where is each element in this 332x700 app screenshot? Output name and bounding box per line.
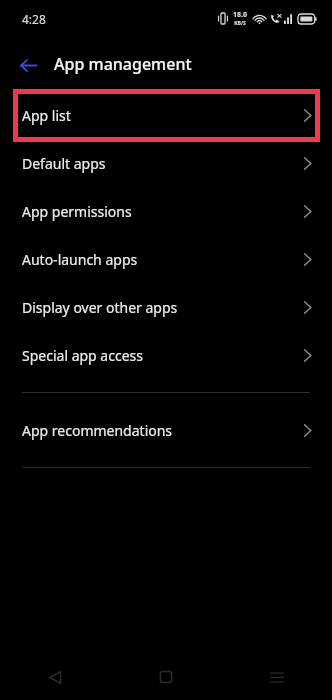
button[interactable]: App list — [0, 91, 332, 139]
staticText: 18.0 — [233, 10, 247, 20]
staticText: App list — [22, 106, 71, 125]
button[interactable]: Home — [110, 654, 221, 700]
staticText: Auto-launch apps — [22, 250, 138, 269]
button[interactable]: App permissions — [0, 187, 332, 235]
staticText: Special app access — [22, 346, 143, 365]
button[interactable]: Recent apps — [221, 654, 332, 700]
staticText: 4:28 — [22, 11, 46, 27]
staticText: Display over other apps — [22, 298, 178, 317]
staticText: App management — [54, 53, 192, 75]
staticText: Default apps — [22, 154, 106, 173]
staticText: KB/S — [234, 20, 246, 27]
button[interactable]: Display over other apps — [0, 283, 332, 331]
button[interactable]: Back — [0, 654, 110, 700]
button[interactable]: Back — [12, 49, 44, 81]
staticText: App recommendations — [22, 421, 173, 440]
button[interactable]: App recommendations — [0, 406, 332, 454]
button[interactable]: Default apps — [0, 139, 332, 187]
button[interactable]: Auto-launch apps — [0, 235, 332, 283]
staticText: App permissions — [22, 202, 132, 221]
button[interactable]: Special app access — [0, 331, 332, 379]
